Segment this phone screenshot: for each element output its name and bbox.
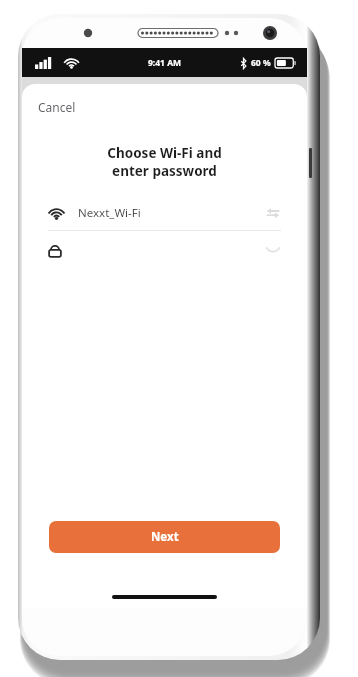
staticText: Next xyxy=(151,529,179,545)
staticText: 9:41 AM xyxy=(148,57,182,69)
button[interactable]: Show password xyxy=(22,231,307,269)
staticText: Cancel xyxy=(38,99,76,115)
button[interactable]: Next xyxy=(49,521,280,553)
button[interactable]: Change network xyxy=(265,205,281,221)
staticText: Nexxt_Wi-Fi xyxy=(78,205,265,221)
staticText: Choose Wi-Fi and enter password xyxy=(22,144,307,180)
button[interactable]: Nexxt_Wi-Fi xyxy=(22,196,307,230)
button[interactable]: Show password xyxy=(265,242,281,258)
button[interactable]: Cancel xyxy=(34,96,80,118)
staticText: 60 % xyxy=(251,57,271,69)
